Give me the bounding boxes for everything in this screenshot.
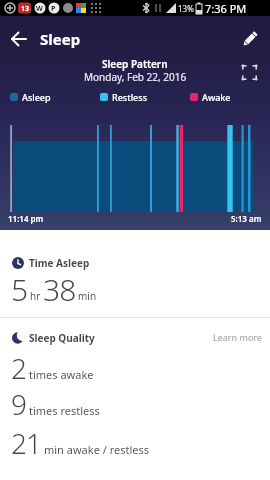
staticText: Sleep bbox=[40, 29, 81, 49]
staticText: Time Asleep bbox=[29, 256, 90, 270]
staticText: times awake bbox=[29, 367, 94, 382]
staticText: hr bbox=[30, 289, 41, 303]
staticText: 9 bbox=[11, 385, 26, 423]
button[interactable]: Time Asleep bbox=[12, 256, 90, 270]
staticText: 5 bbox=[11, 269, 28, 310]
staticText: min bbox=[78, 289, 97, 303]
staticText: times restless bbox=[29, 403, 100, 418]
staticText: 13% bbox=[178, 3, 194, 14]
staticText: 7:36 PM bbox=[205, 1, 247, 16]
staticText: Learn more bbox=[213, 331, 262, 343]
staticText: 21 bbox=[11, 424, 41, 462]
button[interactable]: Learn more bbox=[213, 331, 262, 343]
button[interactable] bbox=[238, 27, 262, 51]
staticText: 13 bbox=[21, 4, 30, 14]
staticText: Sleep Quality bbox=[29, 331, 95, 345]
staticText: Awake bbox=[202, 91, 231, 103]
staticText: 2 bbox=[11, 349, 26, 387]
staticText: 38 bbox=[43, 269, 76, 310]
staticText: Restless bbox=[112, 91, 148, 103]
staticText: Sleep Pattern bbox=[102, 57, 168, 71]
staticText: min awake / restless bbox=[44, 442, 150, 457]
staticText: W bbox=[36, 4, 43, 14]
staticText: P bbox=[51, 4, 56, 14]
staticText: 11:14 pm bbox=[8, 213, 44, 224]
button[interactable] bbox=[242, 65, 257, 80]
staticText: 5:13 am bbox=[231, 213, 262, 224]
button[interactable] bbox=[6, 26, 32, 52]
staticText: Monday, Feb 22, 2016 bbox=[84, 70, 187, 84]
staticText: Asleep bbox=[22, 91, 51, 103]
